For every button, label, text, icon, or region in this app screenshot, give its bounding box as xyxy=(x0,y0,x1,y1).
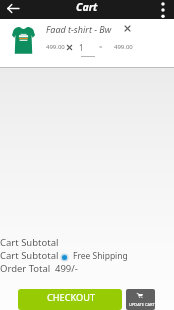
button[interactable]: CHECKOUT xyxy=(18,289,122,310)
button[interactable]: Remove item xyxy=(122,23,133,34)
staticText: Faad t-shirt - Bw xyxy=(46,23,112,35)
staticText: 1 xyxy=(79,42,84,53)
staticText: 499/- xyxy=(55,262,78,275)
staticText: CHECKOUT xyxy=(47,291,96,304)
staticText: Free Shipping xyxy=(73,250,128,262)
staticText: Cart Subtotal xyxy=(0,249,59,262)
staticText: Order Total xyxy=(0,262,51,275)
staticText: = xyxy=(99,43,103,51)
staticText: 499.00 xyxy=(46,43,65,51)
button[interactable]: Free Shipping xyxy=(58,248,128,262)
button[interactable]: Update cart xyxy=(126,289,155,310)
staticText: UPDATE CART xyxy=(129,302,155,307)
staticText: Cart xyxy=(76,0,98,14)
button[interactable]: Back xyxy=(0,0,25,19)
staticText: Cart Subtotal xyxy=(0,236,59,249)
button[interactable]: More options xyxy=(152,0,174,19)
staticText: 499.00 xyxy=(114,43,133,51)
